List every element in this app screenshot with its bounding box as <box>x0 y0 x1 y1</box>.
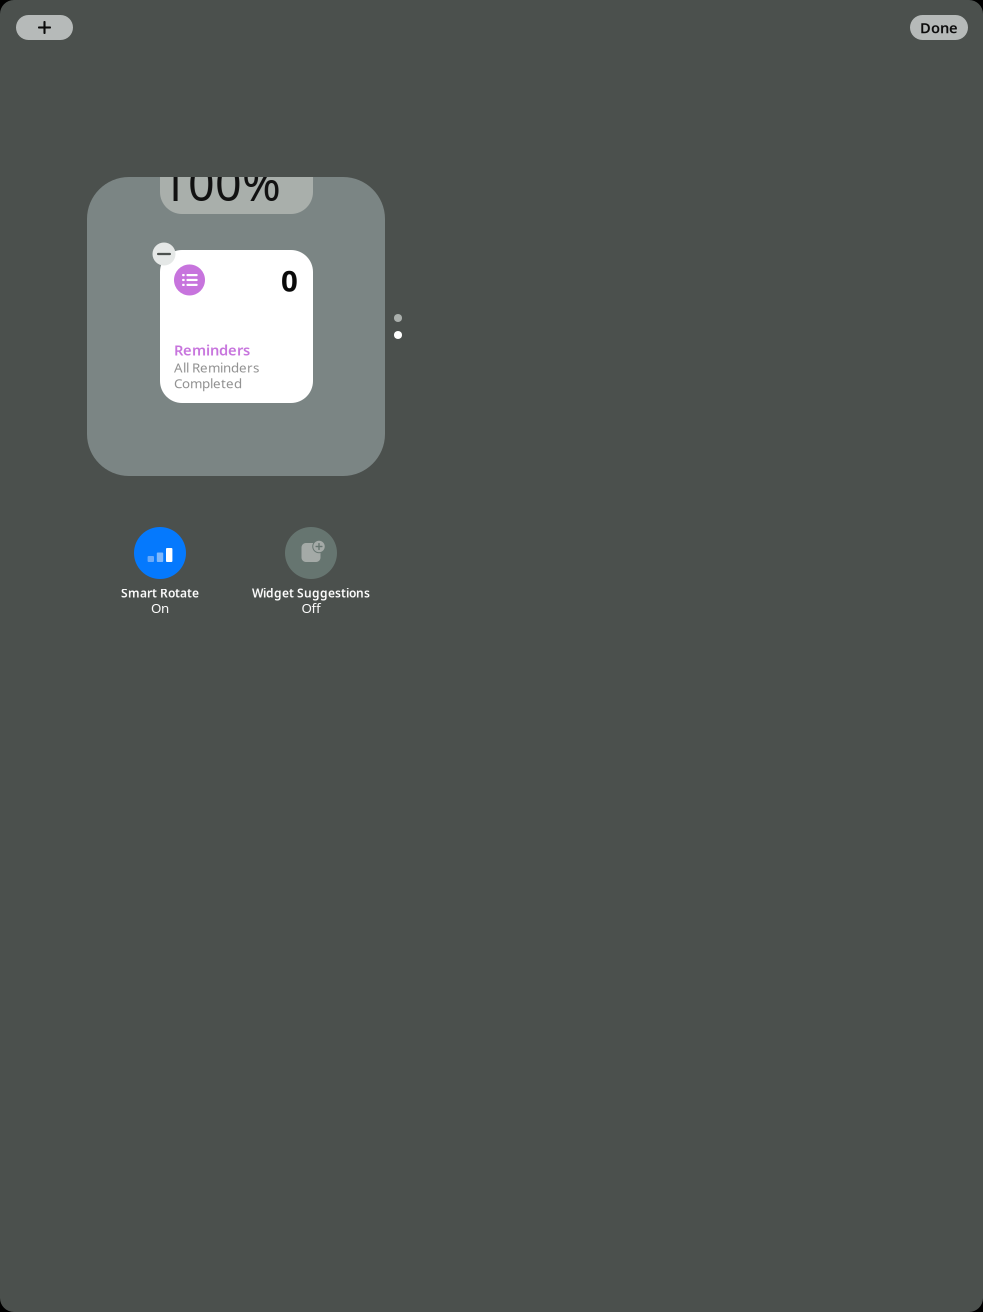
staticText: Widget Suggestions <box>252 585 370 601</box>
staticText: All Reminders <box>174 359 259 376</box>
staticText: Off <box>301 599 320 617</box>
staticText: 100% <box>161 152 281 214</box>
staticText: 0 <box>281 261 298 300</box>
staticText: Done <box>920 18 958 37</box>
staticText: On <box>151 599 169 617</box>
button[interactable]: Add Widget <box>16 15 73 40</box>
button[interactable]: Done <box>910 15 968 40</box>
button[interactable]: Smart Rotate <box>55 527 265 620</box>
staticText: Completed <box>174 374 242 392</box>
button[interactable]: Remove Widget <box>152 242 175 265</box>
button[interactable]: Widget Suggestions <box>206 527 416 620</box>
staticText: Reminders <box>174 340 250 360</box>
staticText: Smart Rotate <box>121 585 199 601</box>
